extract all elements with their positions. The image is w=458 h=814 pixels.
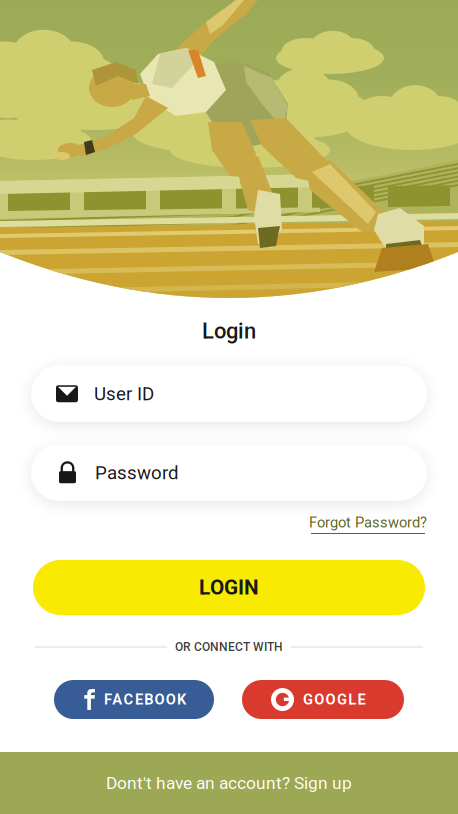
staticText: OR CONNECT WITH bbox=[175, 640, 283, 654]
button[interactable]: GOOGLE bbox=[242, 680, 404, 719]
staticText: GOOGLE bbox=[303, 691, 365, 708]
staticText: LOGIN bbox=[199, 575, 259, 600]
button[interactable]: FACEBOOK bbox=[54, 680, 214, 719]
staticText: Login bbox=[202, 318, 256, 344]
staticText: FACEBOOK bbox=[104, 691, 186, 708]
staticText: Forgot Password? bbox=[309, 514, 427, 531]
staticText: Dont't have an account? Sign up bbox=[106, 773, 352, 793]
button[interactable]: LOGIN bbox=[33, 560, 425, 615]
button[interactable]: Dont't have an account? Sign up bbox=[0, 752, 458, 814]
staticText: User ID bbox=[94, 383, 154, 405]
button[interactable]: Forgot Password? bbox=[309, 514, 427, 534]
staticText: Password bbox=[95, 462, 179, 484]
